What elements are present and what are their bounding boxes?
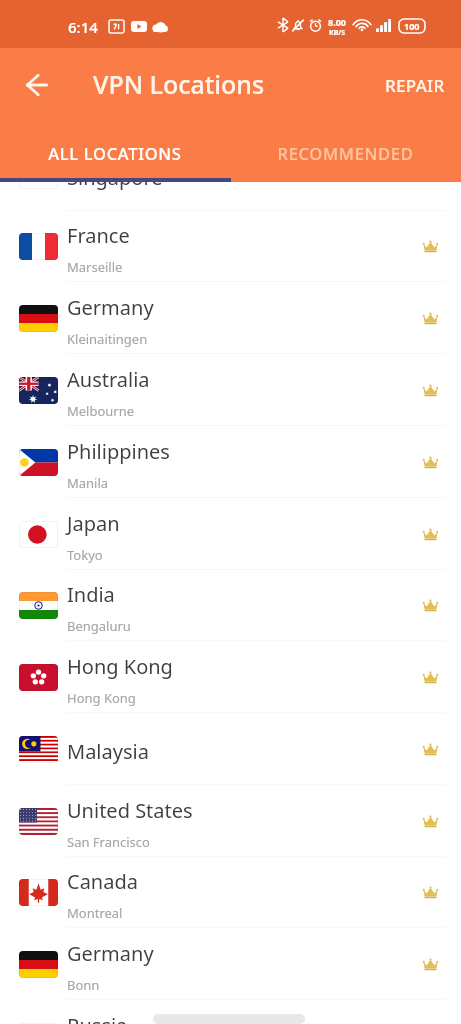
staticText: Malaysia	[67, 738, 149, 765]
staticText: Marseille	[67, 258, 123, 276]
button[interactable]: Singapore	[0, 139, 461, 211]
staticText: RECOMMENDED	[277, 142, 414, 164]
staticText: KB/S	[329, 28, 346, 38]
staticText: United States	[67, 797, 193, 824]
button[interactable]: Philippines	[0, 426, 461, 498]
staticText: Melbourne	[67, 402, 135, 420]
button[interactable]: Germany	[0, 928, 461, 1000]
button[interactable]: Germany	[0, 282, 461, 354]
staticText: Germany	[67, 940, 154, 967]
staticText: Japan	[67, 510, 120, 537]
staticText: Germany	[67, 294, 154, 321]
staticText: Manila	[67, 474, 109, 492]
button[interactable]: REPAIR	[377, 66, 453, 105]
button[interactable]: Back	[14, 63, 58, 107]
staticText: Russia	[67, 1012, 128, 1024]
button[interactable]: Malaysia	[0, 713, 461, 785]
button[interactable]: Hong Kong	[0, 641, 461, 713]
staticText: Hong Kong	[67, 653, 173, 680]
staticText: France	[67, 222, 130, 249]
staticText: India	[67, 581, 115, 608]
button[interactable]: Australia	[0, 354, 461, 426]
staticText: Bengaluru	[67, 617, 131, 635]
staticText: Singapore	[67, 164, 163, 191]
staticText: 6:14	[68, 17, 98, 37]
button[interactable]: ALL LOCATIONS	[0, 122, 230, 182]
button[interactable]: United States	[0, 785, 461, 857]
button[interactable]: Japan	[0, 498, 461, 570]
staticText: REPAIR	[385, 74, 445, 97]
staticText: 100	[404, 20, 420, 32]
staticText: Montreal	[67, 904, 123, 922]
staticText: Australia	[67, 366, 150, 393]
staticText: San Francisco	[67, 833, 150, 851]
staticText: VPN Locations	[93, 67, 265, 101]
button[interactable]: Canada	[0, 856, 461, 928]
button[interactable]: RECOMMENDED	[230, 122, 461, 182]
staticText: Hong Kong	[67, 689, 136, 707]
staticText: Bonn	[67, 976, 100, 994]
button[interactable]: France	[0, 210, 461, 282]
staticText: Kleinaitingen	[67, 330, 148, 348]
staticText: 8.00	[328, 16, 346, 28]
staticText: Tokyo	[67, 546, 103, 564]
button[interactable]: India	[0, 569, 461, 641]
staticText: ALL LOCATIONS	[48, 142, 182, 164]
staticText: Canada	[67, 868, 138, 895]
staticText: Philippines	[67, 438, 170, 465]
button[interactable]: Russia	[0, 1000, 461, 1024]
